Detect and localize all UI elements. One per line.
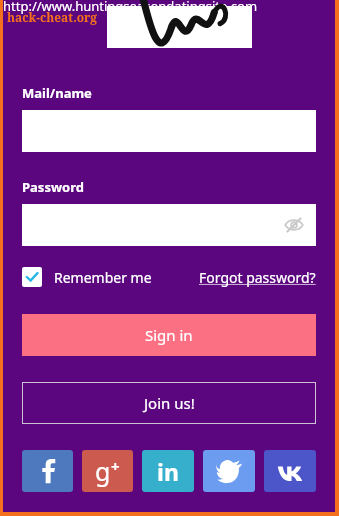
button[interactable]: Join us!	[22, 382, 316, 424]
button[interactable]: Forgot password?	[199, 266, 316, 289]
staticText: Join us!	[144, 393, 195, 413]
button[interactable]: Sign in	[22, 314, 316, 356]
button[interactable]: Facebook	[22, 450, 73, 492]
staticText: +	[111, 456, 120, 476]
button[interactable]: Google Plus	[82, 450, 133, 492]
button[interactable]: Twitter	[203, 450, 255, 492]
staticText: g	[95, 454, 111, 488]
button[interactable]: LinkedIn	[142, 450, 194, 492]
button[interactable]: Show password	[283, 214, 305, 236]
staticText: http://www.huntingseasondatingsite.com	[3, 0, 258, 15]
button[interactable]: Show password	[22, 204, 316, 246]
staticText: Remember me	[54, 268, 152, 287]
staticText: Mail/name	[22, 84, 92, 102]
staticText: hack-cheat.org	[7, 9, 98, 25]
staticText: Password	[22, 178, 84, 196]
staticText: Forgot password?	[199, 268, 316, 287]
button[interactable]: VK	[264, 450, 316, 492]
staticText: in	[157, 456, 179, 487]
button[interactable]: Remember me	[22, 265, 152, 289]
staticText: Sign in	[145, 325, 193, 345]
